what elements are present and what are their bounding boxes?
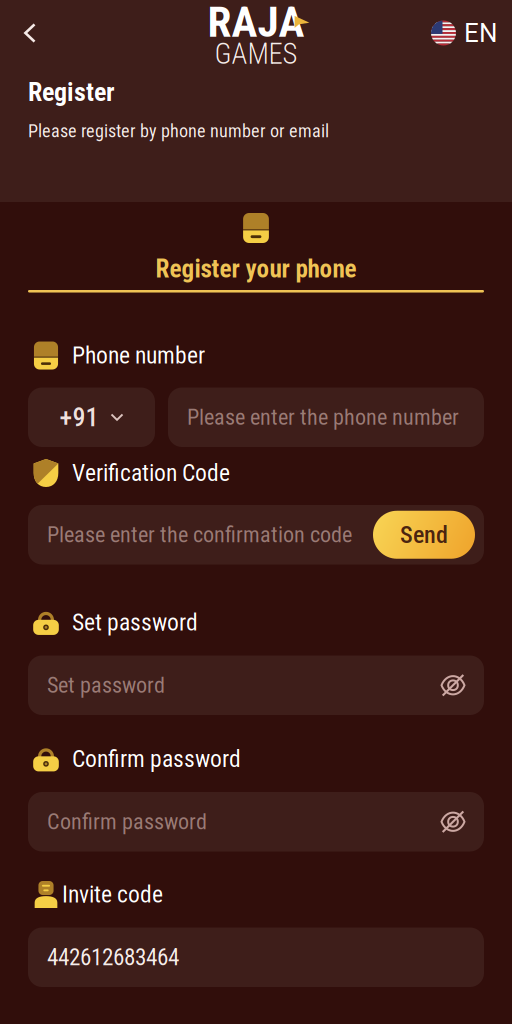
button[interactable]: Show confirm password — [431, 800, 475, 844]
button[interactable]: Language English — [417, 10, 512, 56]
staticText: Set password — [47, 672, 165, 698]
staticText: Please enter the confirmation code — [47, 522, 352, 548]
staticText: Please register by phone number or email — [28, 120, 329, 142]
staticText: +91 — [59, 402, 98, 432]
staticText: 442612683464 — [47, 944, 179, 971]
button[interactable]: Show password — [431, 663, 475, 707]
staticText: Send — [400, 521, 448, 549]
button[interactable]: Back — [0, 10, 53, 56]
staticText: EN — [464, 18, 498, 48]
button[interactable]: Send — [373, 511, 475, 559]
staticText: Register your phone — [155, 254, 356, 284]
staticText: Confirm password — [72, 745, 241, 773]
staticText: RAJA — [207, 0, 304, 47]
staticText: GAMES — [214, 37, 297, 71]
staticText: Please enter the phone number — [187, 404, 459, 430]
staticText: Register — [28, 77, 115, 107]
button[interactable]: Country code +91 — [28, 387, 155, 447]
staticText: Confirm password — [47, 809, 207, 835]
staticText: Verification Code — [72, 459, 230, 487]
staticText: Set password — [72, 609, 198, 636]
staticText: Phone number — [72, 342, 205, 369]
staticText: Invite code — [62, 881, 163, 908]
